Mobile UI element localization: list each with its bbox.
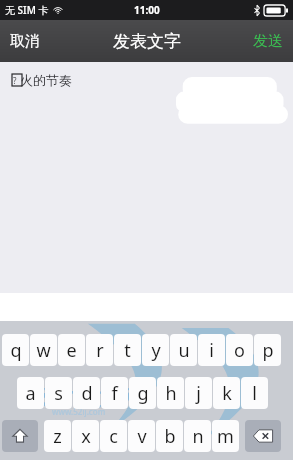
staticText: www.52ij.com (52, 406, 106, 417)
staticText: 发表文字 (113, 31, 181, 52)
staticText: g (137, 381, 149, 406)
staticText: 取消 (10, 32, 40, 51)
staticText: 11:00 (134, 3, 160, 17)
button[interactable]: b (156, 420, 183, 452)
staticText: b (164, 424, 176, 449)
staticText: o (234, 338, 245, 363)
button[interactable]: Shift (2, 420, 38, 452)
staticText: m (217, 424, 234, 449)
staticText: p (262, 338, 274, 363)
button[interactable]: d (73, 377, 100, 409)
button[interactable]: s (45, 377, 72, 409)
button[interactable]: g (129, 377, 156, 409)
staticText: y (151, 338, 161, 363)
button[interactable]: c (100, 420, 127, 452)
button[interactable]: j (185, 377, 212, 409)
button[interactable]: a (17, 377, 44, 409)
button[interactable]: x (72, 420, 99, 452)
button[interactable]: k (213, 377, 240, 409)
button[interactable]: t (114, 334, 141, 366)
staticText: 发送 (253, 32, 283, 51)
button[interactable]: z (44, 420, 71, 452)
button[interactable]: 发送 (243, 24, 293, 59)
staticText: i (209, 338, 214, 363)
button[interactable]: y (142, 334, 169, 366)
staticText: 无 SIM 卡 (5, 3, 49, 17)
button[interactable]: e (58, 334, 85, 366)
staticText: a (25, 381, 36, 406)
staticText: x (81, 424, 91, 449)
staticText: h (165, 381, 177, 406)
staticText: v (137, 424, 147, 449)
staticText: 我爱IT技术网 (22, 384, 142, 411)
button[interactable]: ? (0, 62, 293, 293)
staticText: r (96, 338, 104, 363)
staticText: k (222, 381, 232, 406)
staticText: l (252, 381, 257, 406)
button[interactable]: p (254, 334, 281, 366)
button[interactable]: h (157, 377, 184, 409)
button[interactable]: v (128, 420, 155, 452)
button[interactable]: Backspace (245, 420, 281, 452)
staticText: 火的节奏 (20, 72, 72, 88)
staticText: z (53, 424, 62, 449)
staticText: u (178, 338, 190, 363)
staticText: s (54, 381, 63, 406)
staticText: j (196, 381, 201, 406)
button[interactable]: o (226, 334, 253, 366)
staticText: d (81, 381, 93, 406)
button[interactable]: r (86, 334, 113, 366)
button[interactable]: 取消 (0, 24, 50, 59)
staticText: ? (13, 75, 17, 86)
button[interactable]: q (2, 334, 29, 366)
button[interactable]: f (101, 377, 128, 409)
button[interactable]: w (30, 334, 57, 366)
staticText: e (66, 338, 77, 363)
staticText: f (111, 381, 118, 406)
button[interactable]: n (184, 420, 211, 452)
staticText: c (109, 424, 118, 449)
button[interactable]: l (241, 377, 268, 409)
staticText: q (10, 338, 22, 363)
staticText: t (124, 338, 131, 363)
button[interactable]: u (170, 334, 197, 366)
staticText: w (36, 338, 51, 363)
button[interactable]: m (212, 420, 239, 452)
staticText: n (192, 424, 204, 449)
button[interactable]: i (198, 334, 225, 366)
